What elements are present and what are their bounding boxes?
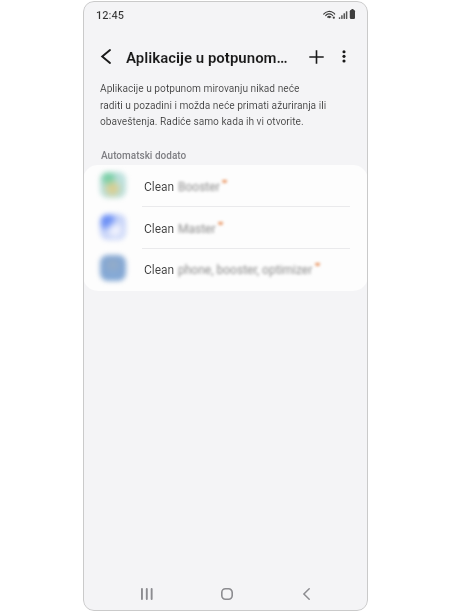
staticText: Clean	[144, 180, 178, 194]
staticText: phone, booster, optimizer	[178, 263, 313, 277]
button[interactable]: Add	[302, 42, 331, 71]
staticText: Booster	[178, 180, 220, 194]
button[interactable]: Clean	[83, 248, 368, 290]
staticText: Master	[178, 222, 216, 236]
button[interactable]: Home	[211, 578, 242, 609]
button[interactable]: Clean	[83, 165, 368, 207]
button[interactable]: Recent apps	[131, 578, 162, 609]
staticText: Automatski dodato	[101, 150, 187, 162]
staticText: Aplikacije u potpunom…	[126, 49, 288, 67]
button[interactable]: Clean	[83, 207, 368, 249]
staticText: Clean	[144, 263, 178, 277]
button[interactable]: More options	[329, 42, 358, 71]
staticText: Clean	[144, 222, 178, 236]
button[interactable]: Back	[91, 42, 121, 71]
staticText: Aplikacije u potpunom mirovanju nikad ne…	[100, 83, 327, 127]
button[interactable]: Back	[291, 578, 322, 609]
staticText: 12:45	[96, 9, 124, 22]
